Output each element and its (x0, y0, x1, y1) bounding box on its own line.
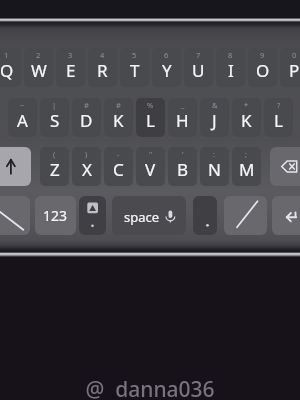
staticText: 0 (292, 50, 297, 60)
staticText: U (192, 59, 205, 82)
staticText: 2 (36, 50, 41, 60)
button[interactable]: 5 (120, 48, 149, 87)
button[interactable]: 4 (88, 48, 117, 87)
staticText: M (239, 158, 255, 181)
button[interactable]: " (136, 147, 165, 186)
staticText: 123 (43, 206, 68, 225)
staticText: - (117, 149, 120, 159)
button[interactable]: - (104, 147, 133, 186)
staticText: Y (162, 59, 172, 82)
staticText: ; (245, 149, 248, 159)
staticText: ~ (20, 100, 25, 110)
staticText: O (256, 59, 270, 82)
staticText: space (124, 208, 160, 226)
staticText: 3 (68, 50, 73, 60)
staticText: J (212, 109, 217, 132)
button[interactable]: ) (72, 147, 101, 186)
button[interactable]: # (104, 98, 133, 137)
button[interactable]: Emoji (79, 196, 106, 235)
button[interactable]: 6 (152, 48, 181, 87)
staticText: | (52, 100, 57, 110)
staticText: ) (85, 149, 88, 159)
staticText: K (113, 109, 124, 132)
button[interactable]: : (200, 147, 229, 186)
staticText: 4 (100, 50, 105, 60)
staticText: % (147, 100, 154, 110)
button[interactable]: Backspace (270, 147, 300, 186)
button[interactable]: | (40, 98, 69, 137)
button[interactable]: 8 (216, 48, 245, 87)
staticText: L (274, 109, 283, 132)
staticText: V (145, 158, 156, 181)
staticText: # (84, 100, 89, 110)
staticText: X (82, 158, 92, 181)
button[interactable]: ( (40, 147, 69, 186)
button[interactable]: * (232, 98, 261, 137)
button[interactable]: % (136, 98, 165, 137)
staticText: N (208, 158, 221, 181)
button[interactable]: Symbols (0, 196, 30, 235)
staticText: ( (53, 149, 56, 159)
staticText: C (113, 158, 124, 181)
staticText: E (66, 59, 76, 82)
staticText: ? (277, 100, 281, 110)
button[interactable]: # (72, 98, 101, 137)
button[interactable]: 7 (184, 48, 213, 87)
staticText: # (116, 100, 121, 110)
staticText: 8 (228, 50, 233, 60)
button[interactable]: 123 (35, 196, 76, 235)
button[interactable]: _ (168, 98, 197, 137)
button[interactable]: 0 (280, 48, 300, 87)
staticText: R (97, 59, 108, 82)
button[interactable]: Slash (224, 196, 267, 235)
staticText: * (244, 100, 249, 110)
button[interactable]: 1 (0, 48, 21, 87)
staticText: D (80, 109, 93, 132)
button[interactable]: Space (112, 196, 186, 235)
staticText: ' (182, 149, 184, 159)
staticText: B (177, 158, 189, 181)
staticText: & (212, 100, 218, 110)
staticText: P (289, 59, 300, 82)
staticText: _ (181, 100, 185, 110)
button[interactable]: ? (264, 98, 293, 137)
button[interactable]: Period (193, 196, 217, 235)
staticText: I (228, 59, 234, 82)
staticText: " (149, 149, 153, 159)
staticText: 6 (164, 50, 169, 60)
button[interactable]: & (200, 98, 229, 137)
staticText: A (17, 109, 28, 132)
staticText: : (213, 149, 216, 159)
staticText: 7 (196, 50, 201, 60)
staticText: S (50, 109, 60, 132)
button[interactable]: 2 (24, 48, 53, 87)
staticText: 9 (260, 50, 265, 60)
staticText: @ danna036 (85, 375, 215, 400)
staticText: Q (0, 59, 14, 82)
button[interactable]: Shift (0, 147, 31, 186)
button[interactable]: ~ (8, 98, 37, 137)
staticText: L (146, 109, 155, 132)
staticText: T (130, 59, 140, 82)
button[interactable]: ; (232, 147, 261, 186)
button[interactable]: Enter (272, 196, 300, 235)
staticText: 1 (4, 50, 9, 60)
button[interactable]: 3 (56, 48, 85, 87)
button[interactable]: ' (168, 147, 197, 186)
staticText: K (241, 109, 252, 132)
staticText: Z (50, 158, 60, 181)
staticText: 5 (132, 50, 137, 60)
staticText: H (176, 109, 189, 132)
button[interactable]: 9 (248, 48, 277, 87)
staticText: W (31, 59, 47, 82)
